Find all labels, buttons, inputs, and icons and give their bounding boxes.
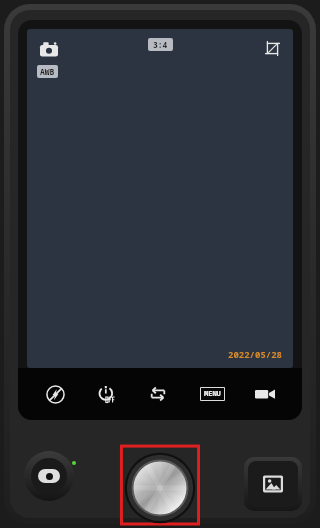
- staticText: 2022/05/28: [228, 348, 283, 360]
- button[interactable]: Shutter: [119, 442, 201, 524]
- button[interactable]: Self timer off: [92, 379, 122, 409]
- button[interactable]: 3:4: [148, 38, 173, 51]
- staticText: MENU: [204, 389, 221, 399]
- button[interactable]: Gallery: [244, 457, 302, 511]
- staticText: 3:4: [153, 39, 168, 50]
- button[interactable]: Flash off: [40, 379, 70, 409]
- button[interactable]: Shooting mode: [37, 37, 61, 61]
- button[interactable]: AWB: [37, 65, 58, 78]
- button[interactable]: MENU: [195, 381, 229, 407]
- button[interactable]: Switch camera: [143, 379, 173, 409]
- button[interactable]: Power: [24, 451, 74, 501]
- button[interactable]: Video mode: [250, 379, 280, 409]
- button[interactable]: Crop: [261, 37, 283, 59]
- staticText: AWB: [40, 66, 55, 77]
